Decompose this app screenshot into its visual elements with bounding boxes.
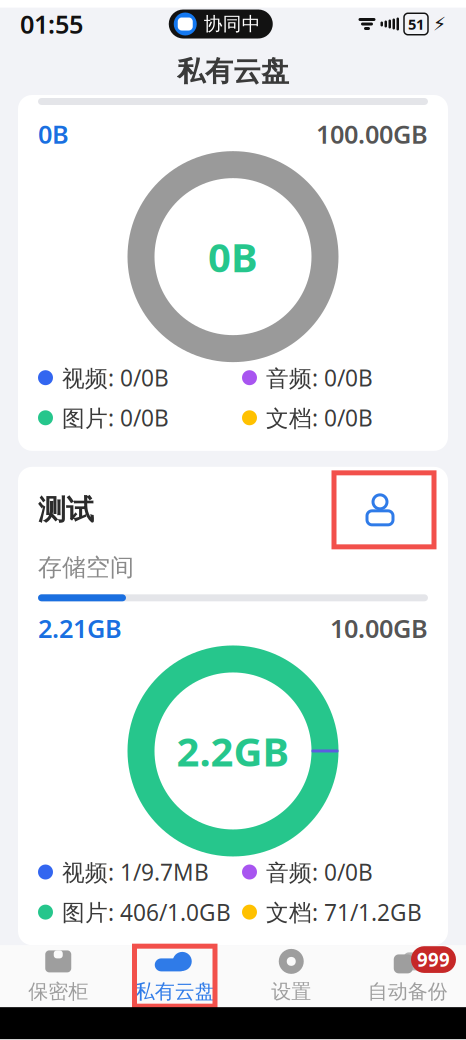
button[interactable]: 私有云盘 <box>116 946 233 1006</box>
button[interactable]: 保密柜 <box>0 946 116 1006</box>
staticText: 音频: 0/0B <box>266 363 373 393</box>
staticText: 私有云盘 <box>135 979 215 1004</box>
button[interactable]: 设置 <box>233 946 349 1006</box>
staticText: 设置 <box>271 979 311 1004</box>
staticText: 2.2GB <box>176 724 289 777</box>
staticText: 图片: 406/1.0GB <box>62 897 231 927</box>
staticText: 51 <box>408 14 424 34</box>
staticText: 音频: 0/0B <box>266 857 373 887</box>
staticText: 100.00GB <box>316 117 428 151</box>
staticText: 01:55 <box>20 7 83 41</box>
staticText: 私有云盘 <box>177 54 289 89</box>
staticText: 保密柜 <box>28 979 88 1004</box>
staticText: 0B <box>38 117 69 151</box>
staticText: 协同中 <box>204 12 261 35</box>
staticText: 存储空间 <box>38 553 134 582</box>
staticText: 图片: 0/0B <box>62 403 169 433</box>
staticText: 0B <box>208 230 258 283</box>
staticText: 测试 <box>38 493 94 527</box>
staticText: 2.21GB <box>38 611 122 645</box>
staticText: ⚡︎ <box>433 13 446 35</box>
staticText: 文档: 0/0B <box>266 403 373 433</box>
staticText: 自动备份 <box>368 979 448 1004</box>
button[interactable]: 自动备份 <box>349 946 466 1006</box>
button[interactable]: 成员 <box>334 473 434 547</box>
staticText: 文档: 71/1.2GB <box>266 897 422 927</box>
staticText: 视频: 0/0B <box>62 363 169 393</box>
staticText: 10.00GB <box>330 611 428 645</box>
staticText: 视频: 1/9.7MB <box>62 857 209 887</box>
staticText: 999 <box>417 947 450 972</box>
